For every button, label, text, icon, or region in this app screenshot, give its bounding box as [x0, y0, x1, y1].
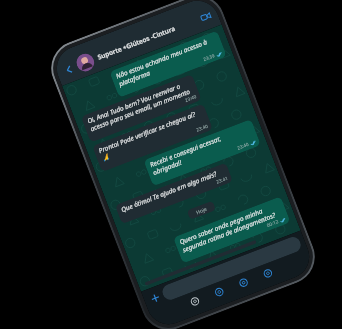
staticText: Quero saber onde pego minha segunda roti… [178, 200, 284, 254]
staticText: Hoje [195, 205, 208, 215]
staticText: 23:41 [215, 175, 229, 185]
staticText: 23:39 [202, 53, 216, 63]
button[interactable]: Oi, Ana! Tudo bem? Vou reenviar o acesso… [81, 74, 202, 143]
button[interactable]: Video call [196, 7, 215, 26]
button[interactable]: Profile photo [74, 51, 97, 74]
staticText: Não estou achando meu acesso à plataform… [115, 34, 220, 88]
staticText: 00:12 [266, 218, 279, 229]
button[interactable] [160, 235, 303, 302]
button[interactable]: Hoje [186, 200, 216, 220]
button[interactable]: Ana, sua segunda rotina de alongamentos … [144, 240, 257, 286]
staticText: Suporte +Glúteos -Cintura [96, 15, 200, 62]
staticText: Prontol Pode verificar se chegou aí? 🙏 [97, 107, 207, 163]
staticText: Recebi e consegui acessar, obrigada!! [149, 123, 254, 177]
staticText: 23:40 [236, 141, 250, 152]
button[interactable]: Settings [259, 264, 277, 282]
staticText: Oi, Ana! Tudo bem? Vou reenviar o acesso… [86, 78, 195, 133]
button[interactable]: Prontol Pode verificar se chegou aí? 🙏 [92, 103, 213, 172]
button[interactable]: Não estou achando meu acesso à plataform… [109, 30, 227, 98]
button[interactable]: Back [59, 60, 78, 79]
button[interactable]: Calls [210, 283, 228, 301]
button[interactable]: Quero saber onde pego minha segunda roti… [173, 196, 291, 264]
button[interactable]: Status [235, 274, 253, 292]
staticText: 23:40 [195, 123, 209, 133]
button[interactable]: Que ótimo! Te ajudo em algo mais? [115, 162, 233, 224]
staticText: Que ótimo! Te ajudo em algo mais? [120, 169, 219, 215]
button[interactable]: Recebi e consegui acessar, obrigada!! [143, 119, 261, 186]
button[interactable]: Add [147, 290, 163, 306]
staticText: 23:40 [184, 93, 198, 104]
button[interactable]: Chats [186, 292, 204, 310]
